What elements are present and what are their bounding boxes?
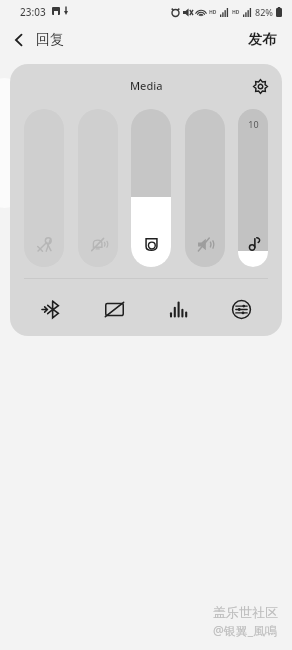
staticText: 盖乐世社区 [213,604,278,620]
staticText: 10 [248,118,259,130]
button[interactable]: Equalizer bars [159,290,197,328]
staticText: Media [130,78,163,93]
button[interactable]: 10 [238,109,268,267]
button[interactable] [78,109,118,267]
button[interactable] [185,109,225,267]
button[interactable]: 发布 [232,26,292,54]
button[interactable] [24,109,64,267]
staticText: HD [209,9,217,16]
button[interactable]: Sound settings [222,290,260,328]
staticText: 发布 [248,31,276,49]
button[interactable]: Cast off [95,290,133,328]
staticText: 23:03 [20,5,46,19]
staticText: HD [232,9,240,16]
button[interactable]: Settings [246,72,274,100]
staticText: 82% [255,6,273,18]
button[interactable]: Back [0,27,74,53]
button[interactable]: Bluetooth [32,290,70,328]
staticText: 回复 [36,31,64,49]
button[interactable] [131,109,171,267]
other: Back [12,33,26,47]
staticText: @银翼_風鳴 [213,622,278,638]
